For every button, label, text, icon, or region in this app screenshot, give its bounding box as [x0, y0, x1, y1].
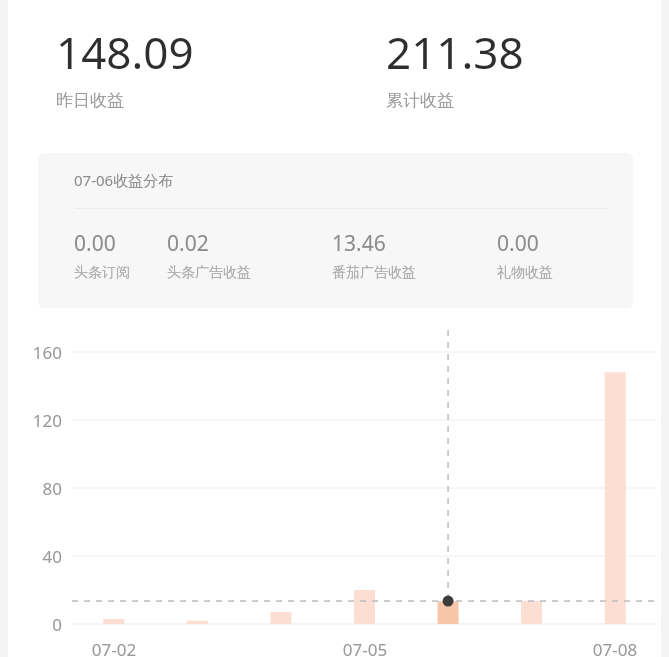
staticText: 昨日收益: [56, 90, 124, 111]
staticText: 累计收益: [386, 90, 454, 111]
staticText: 0: [0, 613, 62, 636]
staticText: 120: [0, 409, 62, 432]
staticText: 头条广告收益: [167, 264, 251, 282]
staticText: 211.38: [386, 22, 524, 82]
staticText: 番茄广告收益: [332, 264, 416, 282]
staticText: 80: [0, 477, 62, 500]
staticText: 0.02: [167, 229, 209, 258]
staticText: 07-08: [570, 638, 660, 657]
staticText: 07-06收益分布: [74, 170, 174, 190]
button[interactable]: 211.38: [334, 22, 669, 111]
staticText: 07-05: [320, 638, 410, 657]
staticText: 07-02: [69, 638, 159, 657]
staticText: 0.00: [74, 229, 116, 258]
staticText: 148.09: [56, 22, 194, 82]
staticText: 0.00: [497, 229, 539, 258]
staticText: 礼物收益: [497, 264, 553, 282]
staticText: 160: [0, 341, 62, 364]
other: Daily revenue bar chart: [0, 328, 669, 657]
button[interactable]: 07-06收益分布: [38, 153, 633, 308]
button[interactable]: 148.09: [0, 22, 334, 111]
staticText: 40: [0, 545, 62, 568]
staticText: 头条订阅: [74, 264, 130, 282]
staticText: 13.46: [332, 229, 386, 258]
